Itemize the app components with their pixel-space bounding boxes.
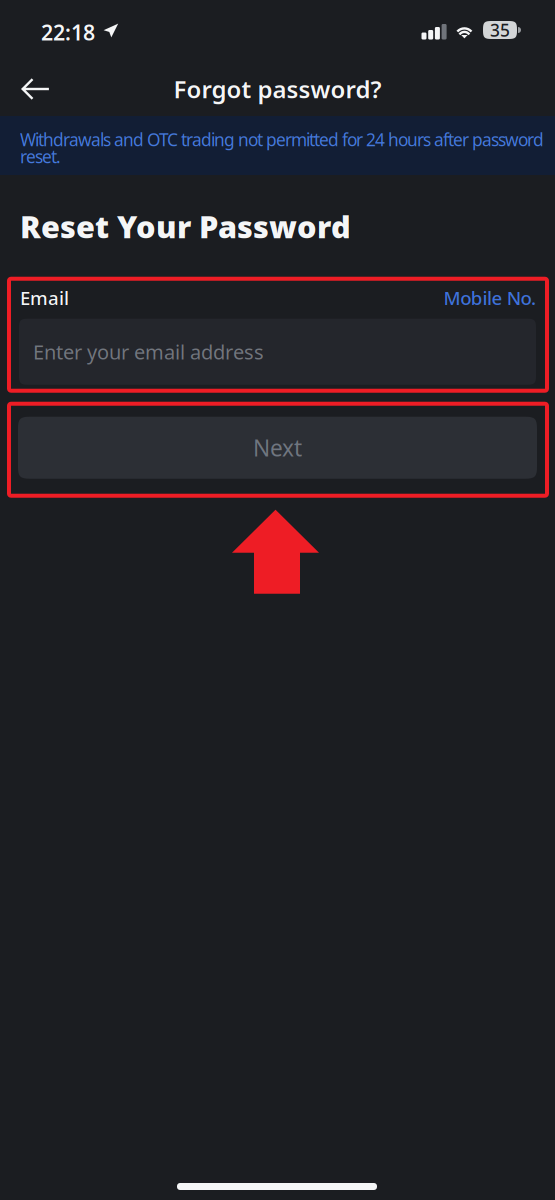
staticText: Email — [20, 285, 69, 310]
staticText: 22:18 — [41, 18, 95, 46]
staticText: reset. — [20, 145, 61, 168]
staticText: Withdrawals and OTC trading not permitte… — [20, 128, 544, 151]
staticText: Next — [253, 433, 302, 463]
staticText: 35 — [490, 18, 510, 41]
button[interactable]: Mobile No. — [444, 285, 536, 310]
button[interactable]: Next — [18, 417, 537, 479]
staticText: Reset Your Password — [20, 206, 351, 247]
staticText: Forgot password? — [173, 73, 381, 105]
staticText: Mobile No. — [444, 285, 536, 310]
staticText: Enter your email address — [33, 338, 264, 365]
button[interactable]: Enter your email address — [19, 319, 536, 385]
button[interactable]: Back — [8, 65, 64, 113]
